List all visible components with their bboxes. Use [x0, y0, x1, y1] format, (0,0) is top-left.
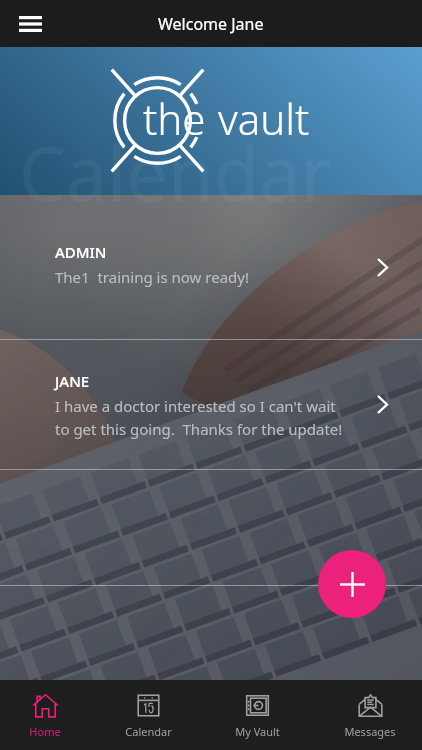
staticText: vault: [218, 90, 310, 147]
staticText: My Vault: [235, 724, 280, 739]
staticText: JANE: [55, 371, 90, 391]
button[interactable]: My Vault: [207, 680, 307, 750]
staticText: Messages: [344, 724, 396, 739]
button[interactable]: Add: [318, 550, 386, 618]
button[interactable]: JANE: [0, 340, 422, 469]
staticText: The1 training is now ready!: [55, 267, 249, 287]
button[interactable]: ADMIN: [0, 195, 422, 339]
staticText: Calendar: [125, 724, 172, 739]
staticText: the: [143, 90, 206, 147]
button[interactable]: Home: [0, 680, 95, 750]
button[interactable]: Open navigation menu: [8, 2, 52, 46]
staticText: Welcome Jane: [158, 13, 264, 35]
staticText: ADMIN: [55, 242, 107, 262]
staticText: Calendar: [19, 122, 332, 223]
staticText: I have a doctor interested so I can't wa…: [55, 396, 343, 439]
staticText: Home: [29, 724, 61, 739]
button[interactable]: Messages: [320, 680, 420, 750]
button[interactable]: Calendar: [98, 680, 198, 750]
